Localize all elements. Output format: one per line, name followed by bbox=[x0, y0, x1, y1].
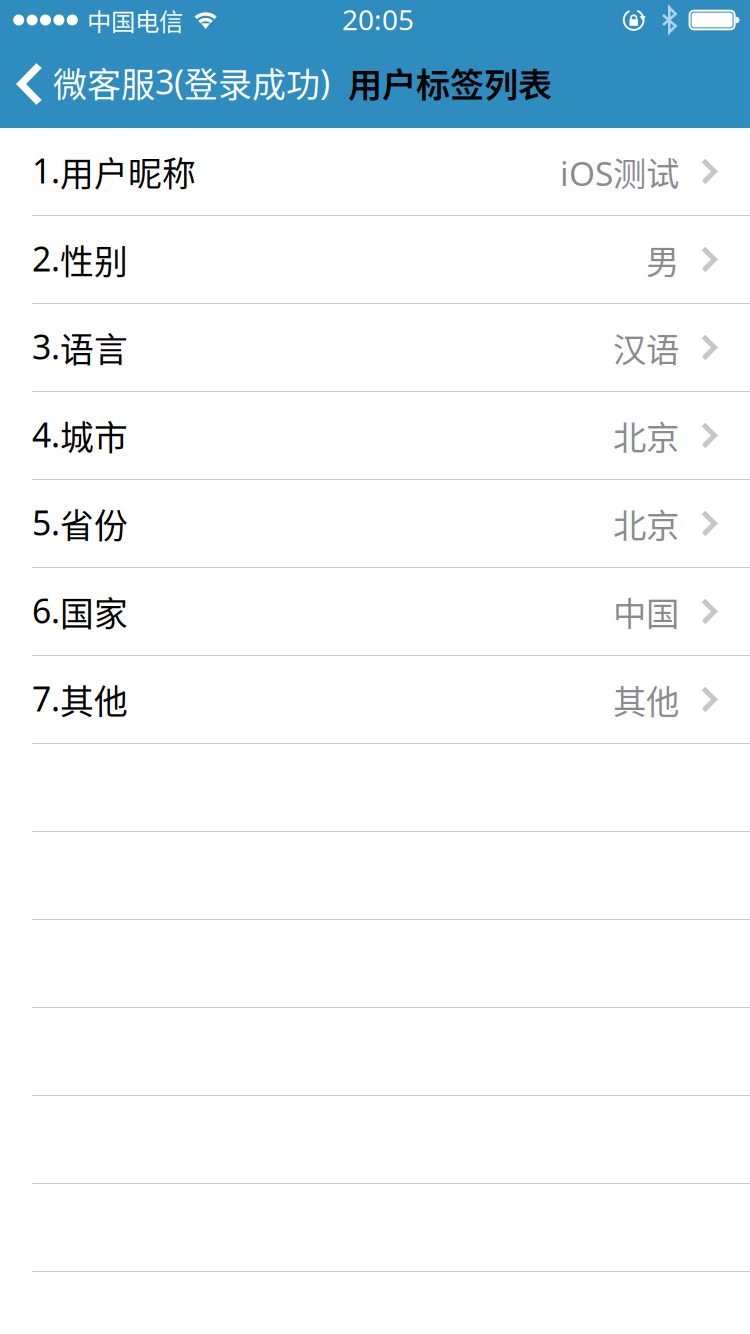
staticText: 其他 bbox=[613, 675, 679, 724]
button[interactable]: Back to 微客服3(登录成功) bbox=[0, 40, 348, 128]
button[interactable]: 6.国家 bbox=[0, 568, 750, 656]
button[interactable]: 4.城市 bbox=[0, 392, 750, 480]
staticText: 1.用户昵称 bbox=[32, 147, 196, 196]
staticText: 汉语 bbox=[613, 323, 679, 372]
button[interactable]: 1.用户昵称 bbox=[0, 128, 750, 216]
staticText: 5.省份 bbox=[32, 499, 128, 548]
staticText: 6.国家 bbox=[32, 587, 128, 636]
staticText: 用户标签列表 bbox=[348, 58, 552, 107]
button[interactable]: 5.省份 bbox=[0, 480, 750, 568]
button[interactable]: 7.其他 bbox=[0, 656, 750, 744]
staticText: 微客服3(登录成功) bbox=[53, 58, 330, 107]
staticText: 20:05 bbox=[342, 0, 414, 38]
staticText: 3.语言 bbox=[32, 323, 128, 372]
staticText: 2.性别 bbox=[32, 235, 128, 284]
staticText: 北京 bbox=[613, 411, 679, 460]
staticText: 4.城市 bbox=[32, 411, 128, 460]
staticText: 7.其他 bbox=[32, 675, 128, 724]
staticText: 男 bbox=[646, 235, 679, 284]
staticText: 中国 bbox=[613, 587, 679, 636]
button[interactable]: 3.语言 bbox=[0, 304, 750, 392]
staticText: 中国电信 bbox=[87, 2, 183, 38]
staticText: iOS测试 bbox=[560, 147, 679, 196]
staticText: 北京 bbox=[613, 499, 679, 548]
button[interactable]: 2.性别 bbox=[0, 216, 750, 304]
